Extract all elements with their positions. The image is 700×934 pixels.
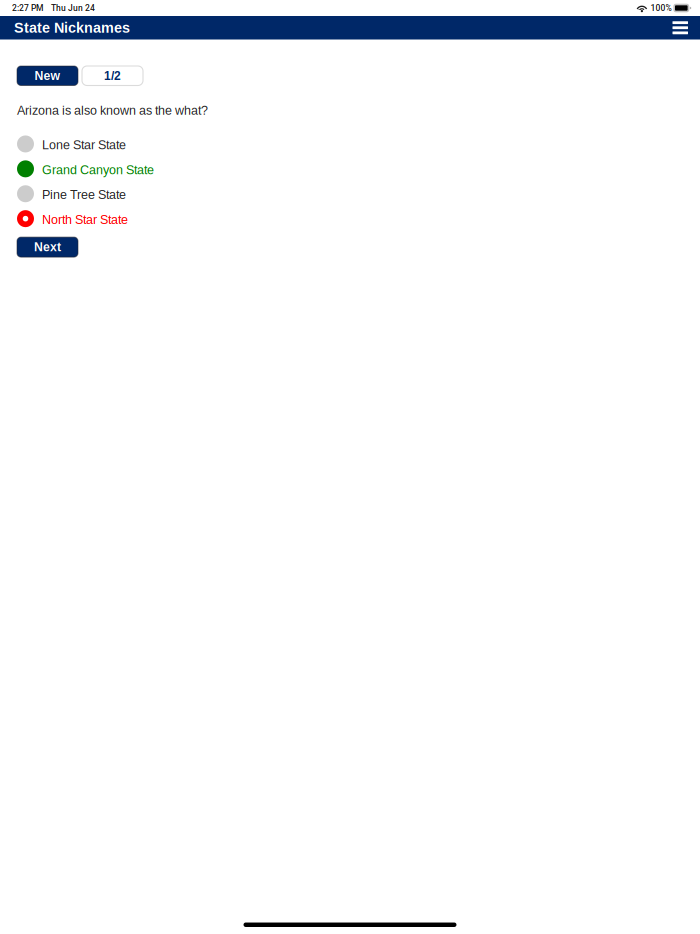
button[interactable]: Lone Star State [17,131,700,156]
button[interactable]: North Star State [17,206,700,231]
staticText: Lone Star State [42,138,126,152]
staticText: 100% [650,3,671,13]
button[interactable]: Menu [667,16,693,39]
button[interactable]: Pine Tree State [17,181,700,206]
staticText: Grand Canyon State [42,163,154,177]
staticText: North Star State [42,213,128,227]
staticText: Arizona is also known as the what? [17,103,208,117]
staticText: Next [34,240,61,254]
staticText: State Nicknames [14,20,130,36]
button[interactable]: Next [17,237,78,257]
button[interactable]: New [17,66,78,85]
staticText: 2:27 PM [12,3,43,13]
button[interactable]: Grand Canyon State [17,156,700,181]
button[interactable]: 1/2 [82,66,143,85]
staticText: New [34,69,60,83]
staticText: Thu Jun 24 [51,3,95,13]
staticText: Pine Tree State [42,188,126,202]
staticText: 1/2 [104,69,121,82]
